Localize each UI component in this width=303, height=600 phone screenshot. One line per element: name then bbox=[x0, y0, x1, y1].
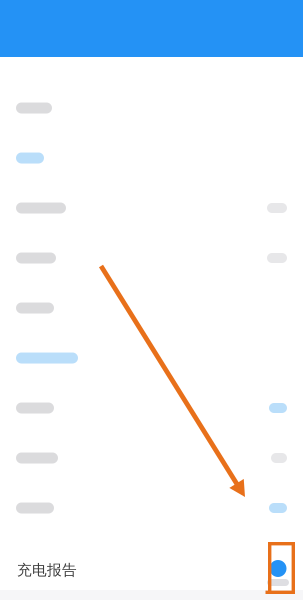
button[interactable] bbox=[0, 333, 303, 383]
button[interactable] bbox=[0, 483, 303, 533]
button[interactable] bbox=[0, 83, 303, 133]
button[interactable] bbox=[0, 283, 303, 333]
button[interactable] bbox=[0, 133, 303, 183]
staticText: 充电报告 bbox=[17, 561, 77, 579]
button[interactable] bbox=[0, 183, 303, 233]
button[interactable] bbox=[0, 433, 303, 483]
button[interactable] bbox=[0, 233, 303, 283]
button[interactable]: Add bbox=[264, 557, 292, 589]
button[interactable] bbox=[0, 383, 303, 433]
button[interactable]: 充电报告 bbox=[0, 546, 303, 590]
